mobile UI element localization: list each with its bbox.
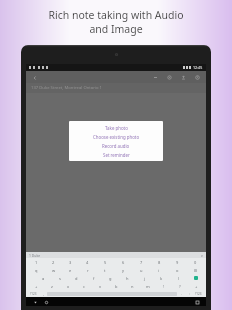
button[interactable]: a (35, 274, 51, 282)
staticText: 0 (194, 260, 197, 265)
button[interactable]: 6 (114, 258, 132, 266)
staticText: v (99, 284, 102, 289)
staticText: f (93, 276, 95, 281)
button[interactable]: 8 (150, 258, 168, 266)
staticText: u (140, 268, 143, 273)
staticText: x (67, 284, 70, 289)
staticText: b (115, 284, 118, 289)
button[interactable]: y (114, 266, 132, 274)
button[interactable]: s (51, 274, 68, 282)
button[interactable]: Recent apps (193, 298, 201, 306)
button[interactable]: i (150, 266, 168, 274)
button[interactable]: ! (156, 282, 172, 290)
staticText: y (122, 268, 125, 273)
button[interactable]: r (79, 266, 96, 274)
button[interactable]: v (92, 282, 108, 290)
staticText: 6 (122, 260, 125, 265)
button[interactable]: Choose existing photo (69, 132, 163, 141)
button[interactable]: Set reminder (69, 150, 163, 159)
staticText: s (59, 276, 61, 281)
staticText: 3 (69, 260, 72, 265)
button[interactable]: Comma (39, 290, 47, 297)
button[interactable]: Undo (151, 73, 160, 82)
button[interactable]: 7 (132, 258, 150, 266)
button[interactable]: o (168, 266, 186, 274)
staticText: 9 (176, 260, 179, 265)
button[interactable]: u (132, 266, 150, 274)
staticText: ?123 (195, 292, 202, 296)
button[interactable]: Symbols (193, 290, 204, 297)
button[interactable]: 0 (186, 258, 204, 266)
button[interactable]: ? (172, 282, 188, 290)
button[interactable]: j (136, 274, 153, 282)
staticText: + (195, 284, 198, 289)
button[interactable]: m (140, 282, 156, 290)
button[interactable]: Emoji (185, 290, 193, 297)
staticText: r (87, 268, 89, 273)
staticText: Record audio (102, 143, 130, 149)
button[interactable]: 4 (79, 258, 96, 266)
staticText: 1 (35, 260, 38, 265)
button[interactable]: Backspace (186, 266, 204, 274)
button[interactable]: b (108, 282, 124, 290)
button[interactable]: h (119, 274, 136, 282)
button[interactable]: + (28, 282, 44, 290)
button[interactable]: 3 (62, 258, 79, 266)
staticText: , (43, 291, 44, 296)
staticText: + (35, 284, 38, 289)
button[interactable]: z (44, 282, 60, 290)
button[interactable]: d (68, 274, 85, 282)
staticText: Rich note taking with Audio and Image (14, 8, 218, 36)
staticText: ! (163, 284, 165, 289)
staticText: Take photo (105, 125, 128, 131)
staticText: e (69, 268, 72, 273)
button[interactable]: Enter (187, 274, 204, 282)
staticText: . (181, 291, 182, 296)
button[interactable]: More options (193, 73, 202, 82)
button[interactable]: w (45, 266, 62, 274)
staticText: 4 (86, 260, 89, 265)
button[interactable]: Share (179, 73, 188, 82)
button[interactable]: Back (30, 73, 39, 82)
button[interactable]: Symbols (28, 290, 39, 297)
staticText: 12:45 (193, 65, 203, 70)
staticText: h (126, 276, 129, 281)
staticText: q (35, 268, 38, 273)
staticText: g (109, 276, 112, 281)
staticText: v (201, 253, 203, 258)
button[interactable]: n (124, 282, 140, 290)
button[interactable]: t (96, 266, 114, 274)
staticText: a (42, 276, 45, 281)
staticText: 137 Duke Street, Montreal Ontario 1 (31, 85, 103, 91)
staticText: 2 (52, 260, 55, 265)
button[interactable]: + (188, 282, 204, 290)
button[interactable]: c (76, 282, 92, 290)
staticText: z (51, 284, 53, 289)
button[interactable]: 5 (96, 258, 114, 266)
button[interactable]: x (60, 282, 76, 290)
button[interactable]: e (62, 266, 79, 274)
button[interactable]: Back (31, 298, 39, 306)
button[interactable]: Take photo (69, 123, 163, 132)
staticText: 5 (104, 260, 107, 265)
staticText: n (131, 284, 134, 289)
staticText: Choose existing photo (93, 134, 140, 140)
staticText: o (176, 268, 179, 273)
staticText: t (104, 268, 106, 273)
button[interactable]: 9 (168, 258, 186, 266)
button[interactable]: g (102, 274, 119, 282)
staticText: c (83, 284, 85, 289)
button[interactable]: Home (42, 298, 50, 306)
button[interactable]: l (170, 274, 187, 282)
staticText: k (160, 276, 163, 281)
button[interactable]: 1 (28, 258, 45, 266)
staticText: i (158, 268, 160, 273)
button[interactable]: q (28, 266, 45, 274)
button[interactable]: Settings (165, 73, 174, 82)
button[interactable]: 2 (45, 258, 62, 266)
button[interactable]: f (85, 274, 102, 282)
button[interactable]: Record audio (69, 141, 163, 150)
button[interactable]: k (153, 274, 170, 282)
